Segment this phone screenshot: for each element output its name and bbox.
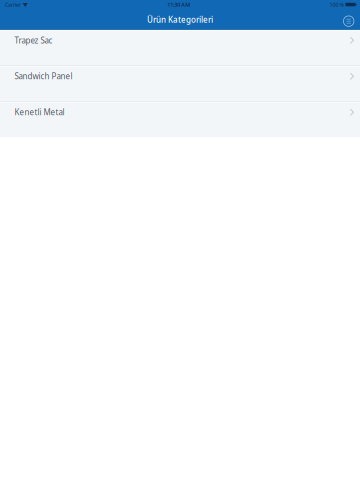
button[interactable]: Trapez Sac	[0, 31, 360, 65]
button[interactable]: Menu	[339, 10, 359, 30]
button[interactable]: Sandwich Panel	[0, 67, 360, 101]
staticText: Kenetli Metal	[15, 107, 65, 117]
staticText: Trapez Sac	[15, 35, 53, 46]
staticText: 11:30 AM	[167, 1, 190, 8]
staticText: Carrier	[5, 1, 21, 8]
staticText: Sandwich Panel	[15, 71, 73, 82]
staticText: 100 %	[330, 1, 344, 8]
button[interactable]: Kenetli Metal	[0, 103, 360, 137]
staticText: Ürün Kategorileri	[147, 14, 213, 25]
